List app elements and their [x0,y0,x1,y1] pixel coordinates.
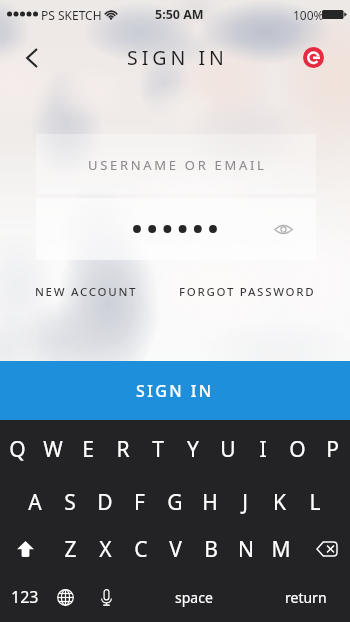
staticText: V [169,535,182,564]
button[interactable]: H [192,484,227,520]
staticText: 100% [293,7,324,23]
button[interactable]: C [123,531,158,567]
button[interactable]: Q [0,431,35,467]
staticText: FORGOT PASSWORD [179,284,316,300]
staticText: S [64,488,76,517]
staticText: M [271,535,291,564]
staticText: P [326,435,339,464]
button[interactable]: B [193,531,228,567]
staticText: E [82,435,94,464]
button[interactable]: L [297,484,332,520]
staticText: W [43,435,63,464]
staticText: U [220,435,236,464]
staticText: return [285,588,327,607]
staticText: F [134,488,145,517]
button[interactable]: SIGN IN [0,361,350,420]
button[interactable]: K [262,484,297,520]
staticText: Y [187,435,199,464]
button[interactable]: U [210,431,245,467]
staticText: SIGN IN [136,380,214,402]
staticText: I [259,435,267,464]
staticText: G [167,488,183,517]
staticText: R [116,435,130,464]
button[interactable]: N [228,531,263,567]
button[interactable]: V [158,531,193,567]
staticText: O [289,435,306,464]
button[interactable]: O [280,431,315,467]
button[interactable]: Y [175,431,210,467]
staticText: H [202,488,218,517]
button[interactable]: J [227,484,262,520]
button[interactable]: A [18,484,52,520]
staticText: NEW ACCOUNT [35,284,138,300]
staticText: B [204,535,218,564]
button[interactable]: S [52,484,87,520]
button[interactable]: USERNAME OR EMAIL [36,134,316,194]
button[interactable]: space [155,580,233,614]
button[interactable]: P [315,431,350,467]
staticText: K [273,488,286,517]
button[interactable]: NEW ACCOUNT [35,284,138,300]
button[interactable]: X [88,531,123,567]
staticText: C [134,535,148,564]
button[interactable]: G [157,484,192,520]
staticText: 123 [11,586,39,608]
staticText: N [238,535,254,564]
staticText: X [99,535,112,564]
button[interactable]: 123 [3,580,47,614]
button[interactable]: Voice input [91,580,121,614]
button[interactable]: Sign in with Google [303,47,324,68]
button[interactable]: Shift [8,531,42,567]
staticText: Z [64,535,77,564]
staticText: space [175,588,213,607]
button[interactable]: R [105,431,140,467]
button[interactable]: W [35,431,70,467]
button[interactable]: I [245,431,280,467]
button[interactable]: Show password [36,198,316,260]
button[interactable]: Show password [269,215,297,243]
button[interactable]: T [140,431,175,467]
button[interactable]: FORGOT PASSWORD [179,284,316,300]
staticText: A [28,488,42,517]
button[interactable]: Delete [310,531,344,567]
staticText: SIGN IN [127,44,228,71]
staticText: D [97,488,113,517]
button[interactable]: F [122,484,157,520]
button[interactable]: D [87,484,122,520]
button[interactable]: M [263,531,298,567]
staticText: Q [9,435,26,464]
staticText: T [152,435,164,464]
staticText: J [242,488,248,517]
button[interactable]: Change keyboard [50,580,80,614]
staticText: L [309,488,321,517]
button[interactable]: Back [12,40,50,75]
button[interactable]: E [70,431,105,467]
staticText: PS SKETCH [41,7,102,23]
staticText: 5:50 AM [155,6,204,23]
button[interactable]: return [272,580,340,614]
staticText: USERNAME OR EMAIL [88,156,267,174]
button[interactable]: Z [53,531,88,567]
